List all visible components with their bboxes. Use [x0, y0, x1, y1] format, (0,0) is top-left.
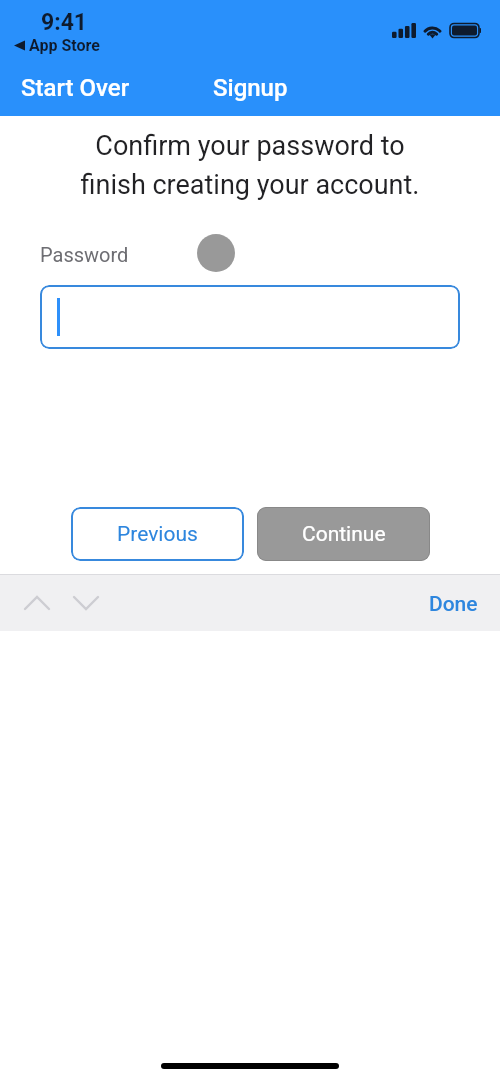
- staticText: Start Over: [21, 74, 130, 102]
- staticText: Continue: [302, 522, 386, 547]
- button[interactable]: Previous field: [15, 581, 59, 625]
- staticText: 9:41: [41, 9, 88, 36]
- button[interactable]: Signup: [205, 70, 296, 106]
- staticText: Signup: [213, 74, 288, 102]
- staticText: App Store: [29, 36, 100, 55]
- staticText: Confirm your password to finish creating…: [0, 130, 500, 200]
- staticText: Done: [429, 592, 478, 617]
- button[interactable]: Start Over: [13, 70, 138, 106]
- button[interactable]: [40, 285, 460, 349]
- staticText: Previous: [117, 522, 198, 547]
- button[interactable]: Done: [421, 586, 486, 623]
- button[interactable]: Back to App Store: [14, 36, 100, 55]
- staticText: Password: [40, 243, 129, 266]
- button[interactable]: Continue: [257, 507, 430, 561]
- button[interactable]: Next field: [64, 581, 108, 625]
- button[interactable]: Previous: [71, 507, 244, 561]
